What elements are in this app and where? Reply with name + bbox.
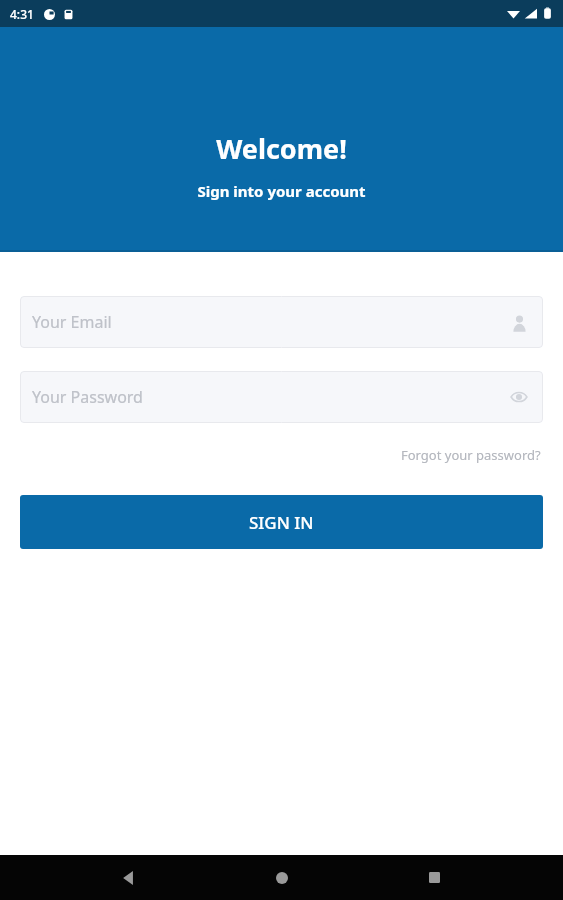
staticText: Your Password [32,386,143,408]
button[interactable]: SIGN IN [20,495,543,549]
button[interactable]: Your Password [20,371,543,423]
staticText: Sign into your account [197,181,366,201]
button[interactable]: Account [507,310,531,334]
staticText: SIGN IN [249,511,314,534]
staticText: Your Email [32,311,112,333]
button[interactable]: Your Email [20,296,543,348]
button[interactable]: Recent apps [410,855,458,900]
button[interactable]: Show password [507,385,531,409]
staticText: Forgot your password? [401,446,541,464]
staticText: Welcome! [216,130,347,167]
staticText: 4:31 [10,6,34,22]
button[interactable]: Forgot your password? [399,443,543,467]
button[interactable]: Back [105,855,153,900]
button[interactable]: Home [258,855,306,900]
